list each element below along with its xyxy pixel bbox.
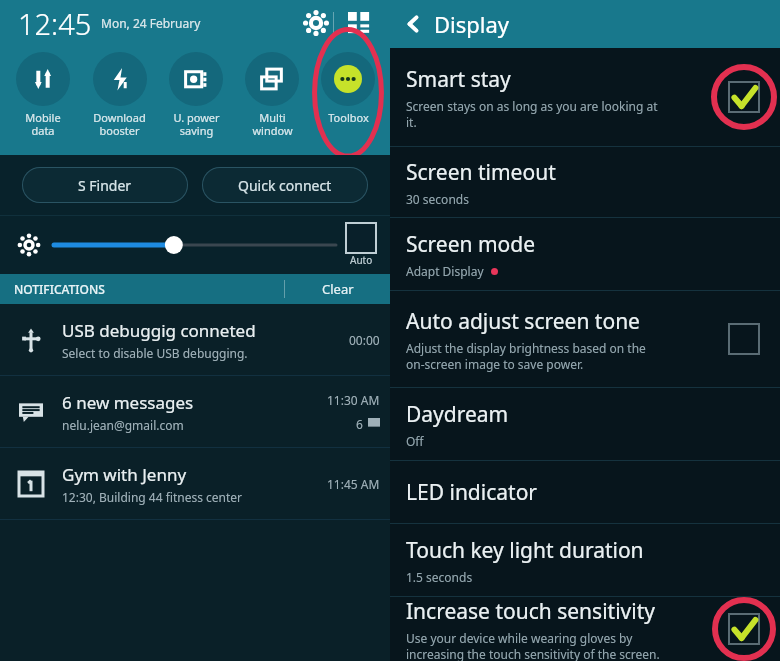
button[interactable]: Mobile data (4, 50, 81, 152)
staticText: 11:45 AM (327, 476, 380, 492)
staticText: Touch key light duration (406, 536, 644, 565)
button[interactable]: Smart stay (390, 48, 780, 146)
button[interactable]: Settings (299, 6, 333, 40)
staticText: U. power saving (173, 110, 220, 138)
button[interactable]: Screen mode (390, 218, 780, 290)
button[interactable]: Auto (346, 223, 376, 267)
staticText: Off (406, 433, 424, 449)
staticText: Screen stays on as long as you are looki… (406, 98, 658, 130)
staticText: Use your device while wearing gloves by … (406, 630, 660, 661)
button[interactable]: Download booster (81, 50, 158, 152)
button[interactable]: Clear (285, 274, 390, 304)
staticText: nelu.jean@gmail.com (62, 417, 184, 433)
staticText: Mon, 24 February (101, 15, 201, 31)
staticText: Select to disable USB debugging. (62, 345, 248, 361)
button[interactable]: Touch key light duration (390, 524, 780, 596)
button[interactable]: Gym with Jenny (0, 448, 390, 519)
staticText: Gym with Jenny (62, 463, 187, 486)
staticText: 12:30, Building 44 fitness center (62, 489, 243, 505)
staticText: Multi window (252, 110, 293, 138)
button[interactable]: Multi window (234, 50, 310, 152)
button[interactable]: 6 new messages (0, 376, 390, 447)
staticText: Daydream (406, 400, 509, 429)
button[interactable]: Auto adjust screen tone toggle (708, 291, 780, 387)
staticText: Increase touch sensitivity (406, 597, 655, 626)
staticText: Clear (322, 280, 354, 298)
staticText: 30 seconds (406, 191, 469, 207)
staticText: 11:30 AM (327, 392, 380, 408)
button[interactable]: S Finder (22, 167, 188, 203)
button[interactable]: Back to Settings (402, 0, 780, 48)
staticText: Adapt Display (406, 263, 484, 279)
staticText: Auto (350, 253, 373, 267)
button[interactable]: USB debuggig conneted (0, 304, 390, 375)
staticText: Toolbox (328, 110, 369, 125)
button[interactable]: Toolbox (310, 50, 386, 152)
staticText: Quick connect (238, 176, 332, 195)
staticText: S Finder (78, 176, 132, 195)
staticText: Smart stay (406, 65, 511, 94)
button[interactable]: LED indicator (390, 461, 780, 523)
button[interactable]: Increase touch sensitivity toggle (708, 597, 780, 661)
staticText: Auto adjust screen tone (406, 307, 640, 336)
staticText: Adjust the display brightness based on t… (406, 340, 646, 372)
button[interactable]: Smart stay toggle (708, 48, 780, 146)
staticText: Screen timeout (406, 158, 556, 187)
staticText: 6 new messages (62, 391, 194, 414)
staticText: Download booster (93, 110, 146, 138)
staticText: NOTIFICATIONS (14, 281, 105, 297)
button[interactable]: Increase touch sensitivity (390, 597, 780, 661)
button[interactable]: U. power saving (158, 50, 234, 152)
staticText: 1.5 seconds (406, 569, 473, 585)
button[interactable]: Brightness slider (54, 233, 336, 257)
button[interactable]: Daydream (390, 388, 780, 460)
staticText: USB debuggig conneted (62, 319, 256, 342)
button[interactable]: Edit quick settings (342, 6, 376, 40)
staticText: Display (434, 9, 510, 39)
button[interactable]: Quick connect (202, 167, 368, 203)
staticText: 12:45 (18, 4, 92, 43)
staticText: 00:00 (349, 332, 380, 348)
staticText: 6 (356, 416, 363, 432)
staticText: LED indicator (406, 478, 538, 507)
staticText: Mobile data (25, 110, 61, 138)
button[interactable]: Auto adjust screen tone (390, 291, 780, 387)
staticText: Screen mode (406, 230, 536, 259)
button[interactable]: Screen timeout (390, 147, 780, 217)
